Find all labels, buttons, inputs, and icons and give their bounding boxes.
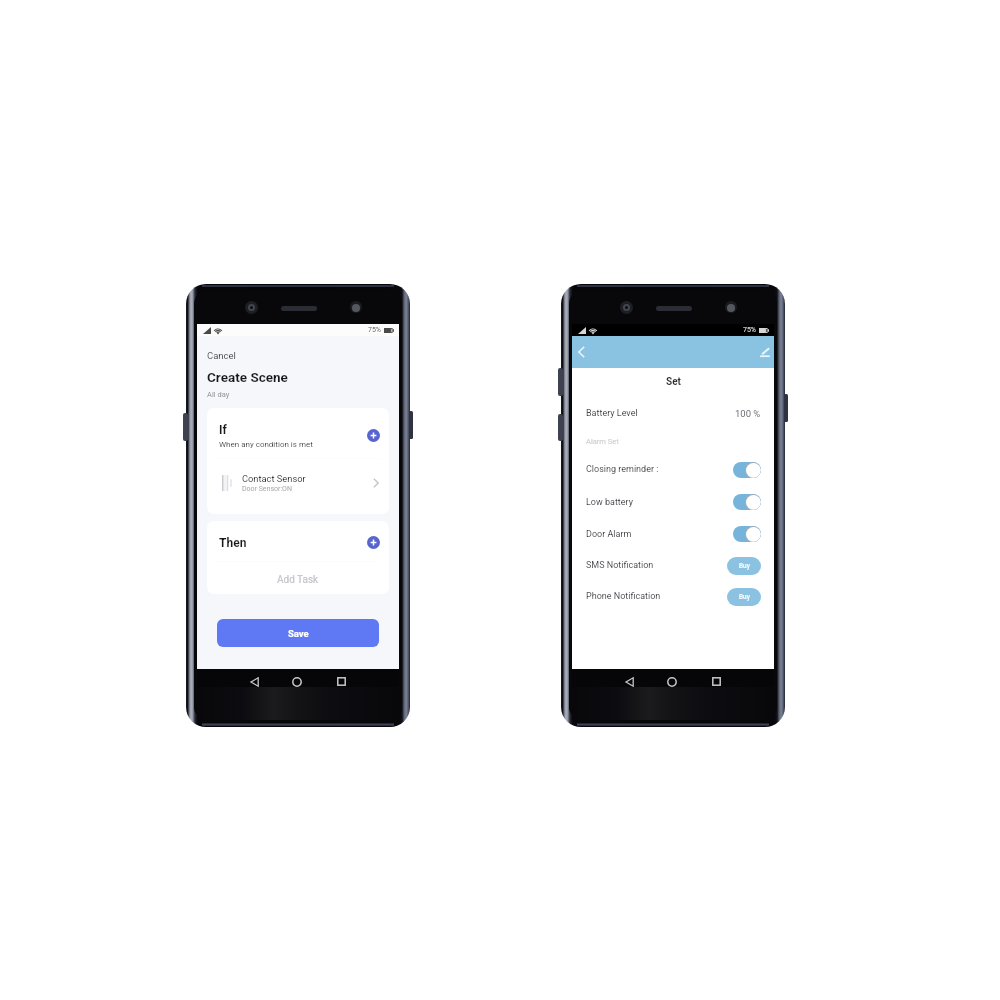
staticText: 100 % xyxy=(735,408,761,419)
staticText: Create Scene xyxy=(207,369,288,385)
staticText: 75% xyxy=(743,326,756,334)
button[interactable]: Toggle on xyxy=(733,494,761,510)
button[interactable]: Home xyxy=(282,676,312,687)
button[interactable]: Edit xyxy=(756,344,772,360)
button[interactable]: Add task xyxy=(367,536,380,549)
button[interactable]: Back xyxy=(578,344,594,360)
staticText: Door Sensor:ON xyxy=(242,485,292,493)
staticText: Save xyxy=(288,628,309,639)
button[interactable]: SMS Notification xyxy=(572,550,774,581)
button[interactable]: Recent apps xyxy=(326,676,356,687)
staticText: Then xyxy=(219,536,367,550)
staticText: Battery Level xyxy=(586,408,735,419)
button[interactable]: Battery Level xyxy=(572,403,774,423)
button[interactable]: Add condition xyxy=(367,429,380,442)
button[interactable]: Add Task xyxy=(207,562,389,594)
button[interactable]: Low battery xyxy=(572,486,774,518)
staticText: Add Task xyxy=(277,574,319,586)
button[interactable]: Toggle on xyxy=(733,526,761,542)
staticText: Low battery xyxy=(586,497,733,508)
staticText: Closing reminder : xyxy=(586,464,733,475)
staticText: Set xyxy=(666,376,681,388)
staticText: 75% xyxy=(368,326,381,334)
button[interactable]: Recent apps xyxy=(701,676,731,687)
staticText: Contact Sensor xyxy=(242,473,306,484)
button[interactable]: Closing reminder : xyxy=(572,453,774,486)
staticText: If xyxy=(219,423,227,437)
staticText: Buy xyxy=(739,562,750,570)
staticText: Door Alarm xyxy=(586,529,733,540)
button[interactable]: Home xyxy=(657,676,687,687)
button[interactable]: Buy xyxy=(727,557,761,575)
button[interactable]: Toggle on xyxy=(733,462,761,478)
button[interactable]: Back xyxy=(615,676,645,687)
staticText: Phone Notification xyxy=(586,591,727,602)
button[interactable]: Buy xyxy=(727,588,761,606)
button[interactable]: Back xyxy=(240,676,270,687)
staticText: Buy xyxy=(739,593,750,601)
staticText: SMS Notification xyxy=(586,560,727,571)
staticText: Cancel xyxy=(207,350,236,361)
staticText: All day xyxy=(207,390,230,399)
button[interactable]: Contact Sensor xyxy=(207,459,389,514)
staticText: When any condition is met xyxy=(219,440,313,449)
button[interactable]: Door Alarm xyxy=(572,518,774,550)
button[interactable]: Cancel xyxy=(207,350,236,361)
button[interactable]: Phone Notification xyxy=(572,581,774,612)
staticText: Alarm Set xyxy=(586,437,619,446)
button[interactable]: Save xyxy=(217,619,379,647)
